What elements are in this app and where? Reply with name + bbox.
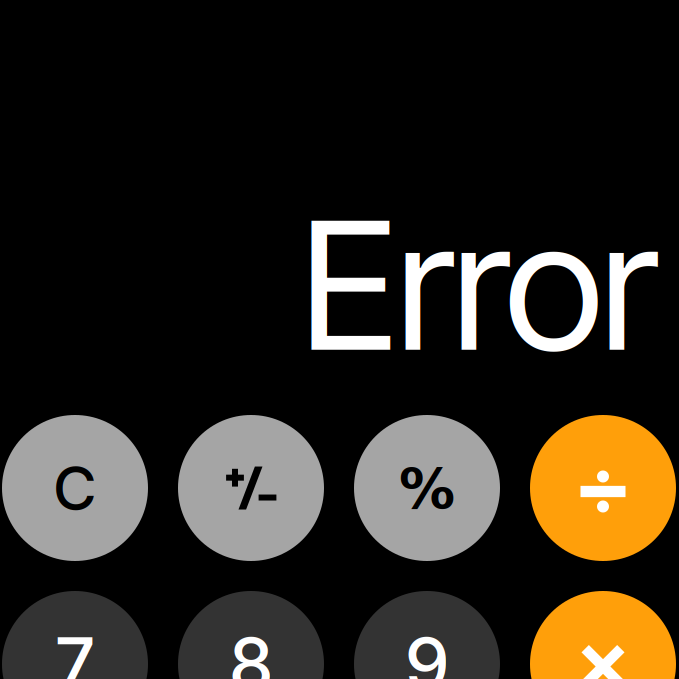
staticText: Error	[300, 178, 658, 393]
button[interactable]: Eight	[178, 591, 324, 679]
staticText: C	[54, 452, 96, 524]
staticText: 9	[406, 620, 448, 679]
button[interactable]: Percent	[354, 415, 500, 561]
button[interactable]: Seven	[2, 591, 148, 679]
button[interactable]: Nine	[354, 591, 500, 679]
staticText: %	[399, 455, 455, 521]
button[interactable]: Plus Minus	[178, 415, 324, 561]
button[interactable]: Multiply	[530, 591, 676, 679]
button[interactable]: Divide	[530, 415, 676, 561]
staticText: 7	[56, 620, 94, 679]
staticText: 8	[230, 620, 272, 679]
button[interactable]: Clear	[2, 415, 148, 561]
